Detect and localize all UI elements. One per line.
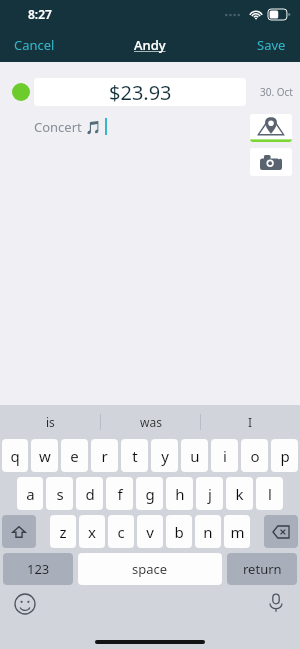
- button[interactable]: s: [46, 477, 73, 510]
- staticText: space: [132, 560, 168, 578]
- button[interactable]: h: [166, 477, 193, 510]
- staticText: t: [132, 446, 138, 466]
- button[interactable]: k: [226, 477, 253, 510]
- button[interactable]: c: [108, 515, 134, 548]
- button[interactable]: d: [76, 477, 103, 510]
- button[interactable]: t: [121, 439, 148, 472]
- button[interactable]: i: [211, 439, 238, 472]
- staticText: $23.93: [109, 79, 172, 106]
- staticText: Andy: [134, 36, 166, 54]
- staticText: a: [26, 484, 35, 504]
- staticText: w: [39, 446, 51, 466]
- button[interactable]: Backspace: [264, 515, 298, 548]
- staticText: y: [161, 446, 169, 466]
- staticText: s: [56, 484, 64, 504]
- staticText: p: [280, 446, 290, 466]
- staticText: o: [250, 446, 260, 466]
- staticText: v: [146, 522, 154, 542]
- staticText: b: [174, 522, 184, 542]
- staticText: 8:27: [28, 6, 52, 22]
- button[interactable]: g: [136, 477, 163, 510]
- button[interactable]: a: [17, 477, 43, 510]
- button[interactable]: q: [2, 439, 28, 472]
- button[interactable]: Dictation: [266, 593, 286, 613]
- button[interactable]: v: [137, 515, 163, 548]
- button[interactable]: x: [79, 515, 105, 548]
- button[interactable]: Shift: [2, 515, 36, 548]
- staticText: Cancel: [14, 36, 55, 54]
- staticText: q: [10, 446, 20, 466]
- button[interactable]: w: [31, 439, 58, 472]
- staticText: e: [70, 446, 79, 466]
- button[interactable]: m: [224, 515, 250, 548]
- button[interactable]: l: [256, 477, 283, 510]
- staticText: is: [46, 414, 55, 430]
- button[interactable]: is: [0, 405, 100, 439]
- staticText: k: [235, 484, 244, 504]
- button[interactable]: return: [227, 553, 297, 585]
- staticText: I: [248, 414, 253, 430]
- staticText: u: [190, 446, 200, 466]
- staticText: j: [208, 484, 212, 504]
- button[interactable]: b: [166, 515, 192, 548]
- button[interactable]: n: [195, 515, 221, 548]
- button[interactable]: u: [181, 439, 208, 472]
- staticText: g: [145, 484, 155, 504]
- staticText: z: [59, 522, 67, 542]
- staticText: was: [140, 414, 162, 430]
- button[interactable]: o: [241, 439, 268, 472]
- button[interactable]: Take photo: [250, 148, 292, 176]
- staticText: x: [88, 522, 96, 542]
- button[interactable]: Cancel: [0, 28, 69, 62]
- staticText: 123: [27, 560, 50, 578]
- staticText: m: [230, 522, 245, 542]
- button[interactable]: Andy: [126, 32, 174, 58]
- button[interactable]: was: [101, 405, 200, 439]
- staticText: return: [243, 560, 282, 578]
- staticText: 30. Oct: [260, 85, 293, 99]
- staticText: d: [85, 484, 95, 504]
- button[interactable]: j: [196, 477, 223, 510]
- button[interactable]: Add location: [250, 114, 292, 142]
- staticText: Save: [257, 36, 286, 54]
- button[interactable]: e: [61, 439, 88, 472]
- button[interactable]: I: [201, 405, 300, 439]
- staticText: h: [175, 484, 185, 504]
- staticText: c: [117, 522, 125, 542]
- button[interactable]: space: [78, 553, 222, 585]
- button[interactable]: Emoji: [14, 593, 36, 615]
- staticText: i: [223, 446, 227, 466]
- button[interactable]: 123: [3, 553, 73, 585]
- staticText: n: [203, 522, 213, 542]
- button[interactable]: r: [91, 439, 118, 472]
- button[interactable]: Save: [243, 28, 300, 62]
- button[interactable]: p: [271, 439, 298, 472]
- staticText: r: [101, 446, 108, 466]
- staticText: l: [268, 484, 272, 504]
- button[interactable]: y: [151, 439, 178, 472]
- button[interactable]: $23.93: [34, 78, 246, 106]
- button[interactable]: Category color: [12, 83, 30, 101]
- button[interactable]: f: [106, 477, 133, 510]
- staticText: Concert 🎵: [34, 118, 102, 136]
- button[interactable]: z: [50, 515, 76, 548]
- staticText: f: [117, 484, 123, 504]
